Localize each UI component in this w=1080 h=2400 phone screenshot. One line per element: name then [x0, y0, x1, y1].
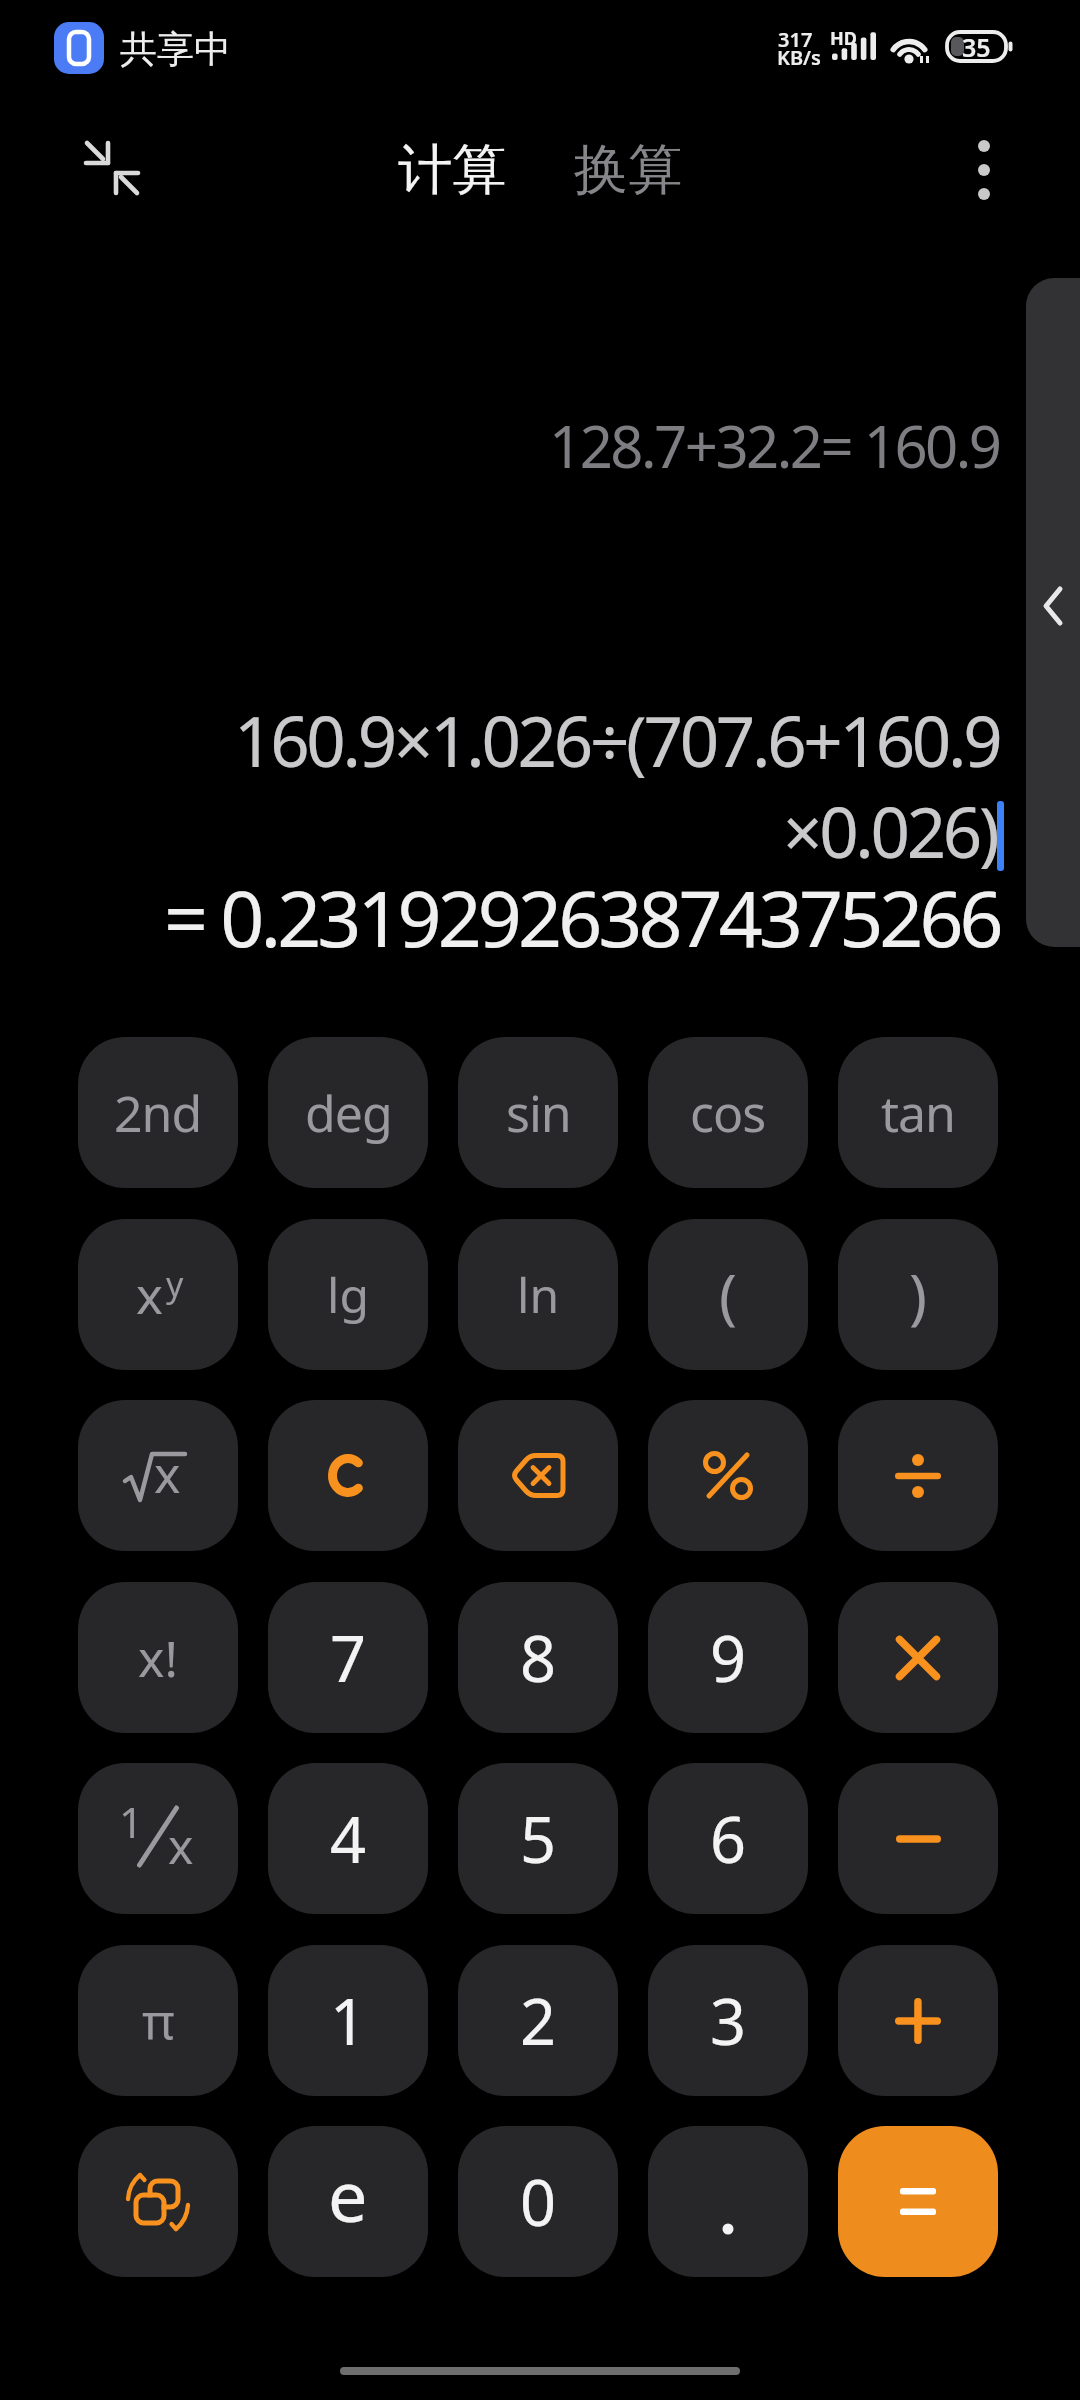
staticText: 换算: [574, 136, 682, 204]
button[interactable]: 5: [458, 1763, 618, 1914]
staticText: e: [328, 2147, 368, 2242]
staticText: deg: [305, 1079, 392, 1147]
staticText: 计算: [398, 136, 506, 204]
button[interactable]: 6: [648, 1763, 808, 1914]
button[interactable]: [72, 128, 152, 208]
staticText: x: [168, 1813, 194, 1878]
button[interactable]: 7: [268, 1582, 428, 1733]
button[interactable]: [648, 1400, 808, 1551]
button[interactable]: [1026, 278, 1080, 947]
staticText: (: [719, 1254, 737, 1336]
button[interactable]: x: [78, 1219, 238, 1370]
button[interactable]: [78, 2126, 238, 2277]
button[interactable]: lg: [268, 1219, 428, 1370]
button[interactable]: (: [648, 1219, 808, 1370]
staticText: 5: [520, 1796, 557, 1882]
button[interactable]: [838, 1763, 998, 1914]
staticText: 317: [778, 26, 813, 53]
button[interactable]: [838, 1582, 998, 1733]
button[interactable]: 0: [458, 2126, 618, 2277]
staticText: 2: [520, 1978, 557, 2064]
button[interactable]: [944, 130, 1024, 210]
button[interactable]: sin: [458, 1037, 618, 1188]
button[interactable]: deg: [268, 1037, 428, 1188]
button[interactable]: π: [78, 1945, 238, 2096]
button[interactable]: [268, 1400, 428, 1551]
button[interactable]: 4: [268, 1763, 428, 1914]
staticText: 9: [710, 1615, 747, 1701]
button[interactable]: [458, 1400, 618, 1551]
staticText: x: [154, 1440, 181, 1508]
staticText: 4: [330, 1796, 367, 1882]
button[interactable]: 2: [458, 1945, 618, 2096]
staticText: 0: [520, 2159, 557, 2245]
button[interactable]: [838, 1945, 998, 2096]
button[interactable]: tan: [838, 1037, 998, 1188]
staticText: π: [142, 1987, 175, 2055]
button[interactable]: 1: [268, 1945, 428, 2096]
button[interactable]: 9: [648, 1582, 808, 1733]
button[interactable]: [54, 22, 104, 74]
button[interactable]: 换算: [574, 136, 682, 204]
staticText: 1: [119, 1793, 144, 1850]
staticText: ln: [517, 1262, 560, 1327]
staticText: KB/s: [777, 44, 821, 71]
staticText: 160.9×1.026÷(707.6+160.9: [234, 693, 1000, 785]
button[interactable]: [838, 2126, 998, 2277]
staticText: HD: [830, 26, 857, 51]
staticText: 3: [710, 1978, 747, 2064]
staticText: x: [136, 1259, 163, 1328]
button[interactable]: 计算: [398, 136, 506, 204]
staticText: 35: [962, 30, 991, 61]
button[interactable]: [648, 2126, 808, 2277]
staticText: 1: [330, 1978, 367, 2064]
staticText: cos: [690, 1079, 766, 1147]
button[interactable]: 8: [458, 1582, 618, 1733]
staticText: tan: [881, 1079, 955, 1147]
staticText: y: [166, 1261, 184, 1307]
staticText: sin: [506, 1079, 571, 1147]
staticText: 2nd: [114, 1079, 202, 1147]
staticText: lg: [327, 1262, 369, 1327]
staticText: ): [909, 1254, 927, 1336]
button[interactable]: 2nd: [78, 1037, 238, 1188]
button[interactable]: ln: [458, 1219, 618, 1370]
staticText: ×0.026): [783, 784, 997, 876]
button[interactable]: ): [838, 1219, 998, 1370]
staticText: 6: [710, 1796, 747, 1882]
staticText: 8: [520, 1615, 557, 1701]
button[interactable]: x: [78, 1400, 238, 1551]
staticText: x!: [138, 1624, 178, 1692]
button[interactable]: 1: [78, 1763, 238, 1914]
button[interactable]: e: [268, 2126, 428, 2277]
button[interactable]: x!: [78, 1582, 238, 1733]
staticText: 7: [330, 1615, 367, 1701]
staticText: 共享中: [120, 26, 231, 73]
button[interactable]: [838, 1400, 998, 1551]
staticText: 128.7+32.2= 160.9: [549, 406, 1000, 485]
button[interactable]: 3: [648, 1945, 808, 2096]
staticText: = 0.231929263874375266: [164, 865, 1000, 963]
button[interactable]: cos: [648, 1037, 808, 1188]
